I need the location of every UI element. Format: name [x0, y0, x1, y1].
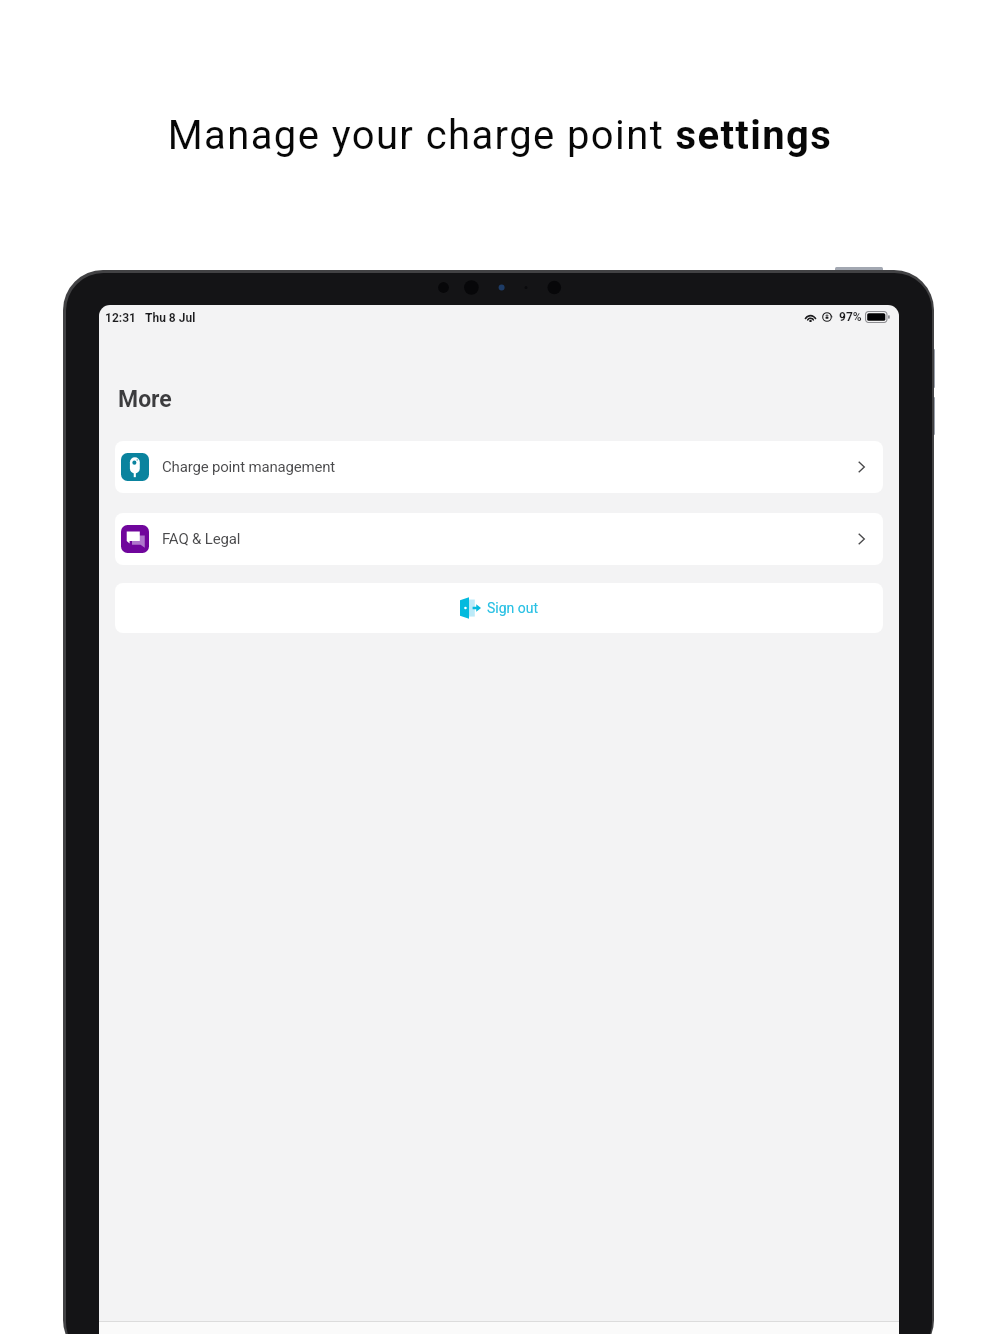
staticText: Charge point management — [162, 458, 336, 476]
staticText: 12:31 — [105, 311, 136, 325]
staticText: 97% — [839, 310, 862, 323]
staticText: FAQ & Legal — [162, 530, 241, 548]
staticText: Thu 8 Jul — [145, 311, 196, 325]
other: Open — [858, 533, 865, 545]
button[interactable]: Sign out — [115, 583, 883, 633]
staticText: Sign out — [487, 600, 539, 616]
staticText: More — [118, 386, 172, 413]
button[interactable]: Charge point management — [115, 441, 883, 493]
other: Open — [858, 461, 865, 473]
button[interactable]: FAQ & Legal — [115, 513, 883, 565]
staticText: Manage your charge point settings — [0, 112, 1000, 159]
